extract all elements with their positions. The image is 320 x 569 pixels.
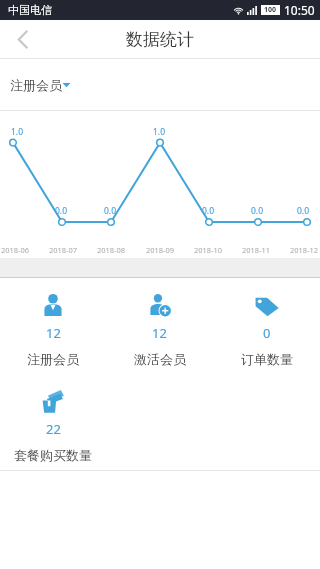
staticText: 注册会员 [10,77,62,93]
staticText: 22 [46,420,61,438]
button[interactable]: 注册会员 [0,59,320,110]
staticText: 1.0 [11,126,24,138]
staticText: 中国电信 [8,3,52,17]
staticText: 0.0 [104,205,117,217]
staticText: 注册会员 [27,351,79,367]
staticText: 1.0 [153,126,166,138]
staticText: 套餐购买数量 [14,447,92,463]
staticText: 数据统计 [126,29,194,50]
staticText: 2018-11 [242,245,271,255]
staticText: 2018-10 [194,245,223,255]
staticText: 2018-07 [49,245,78,255]
staticText: 0.0 [297,205,310,217]
button[interactable]: 0 [213,278,320,374]
staticText: 0.0 [202,205,215,217]
staticText: 订单数量 [241,351,293,367]
staticText: 12 [46,324,61,342]
button[interactable]: Back [0,20,46,58]
staticText: 0.0 [251,205,264,217]
button[interactable]: 12 [106,278,213,374]
staticText: 2018-12 [290,245,319,255]
staticText: 12 [152,324,167,342]
staticText: 2018-08 [97,245,126,255]
staticText: 100 [264,5,277,15]
staticText: 2018-09 [146,245,175,255]
staticText: 激活会员 [134,351,186,367]
staticText: 0.0 [55,205,68,217]
button[interactable]: 22 [0,374,106,470]
staticText: 2018-06 [1,245,30,255]
button[interactable]: 12 [0,278,106,374]
staticText: 10:50 [284,2,315,18]
staticText: 0 [263,324,271,342]
